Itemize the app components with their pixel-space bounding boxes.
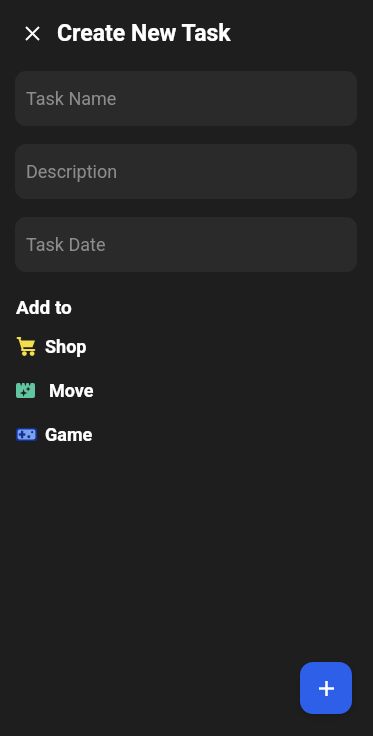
staticText: Task Name xyxy=(26,88,117,109)
staticText: Description xyxy=(26,161,118,182)
staticText: Create New Task xyxy=(57,20,231,47)
staticText: Add to xyxy=(16,296,72,318)
button[interactable]: Game xyxy=(0,412,373,456)
button[interactable]: Close xyxy=(12,13,53,54)
staticText: Game xyxy=(45,424,93,445)
staticText: Shop xyxy=(45,336,87,357)
staticText: Task Date xyxy=(26,234,106,255)
button[interactable]: Task Name xyxy=(15,71,357,126)
staticText: Move xyxy=(49,380,94,401)
button[interactable]: Add task xyxy=(300,662,352,714)
button[interactable]: Task Date xyxy=(15,217,357,272)
button[interactable]: Shop xyxy=(0,324,373,368)
button[interactable]: Description xyxy=(15,144,357,199)
button[interactable]: Move xyxy=(0,368,373,412)
